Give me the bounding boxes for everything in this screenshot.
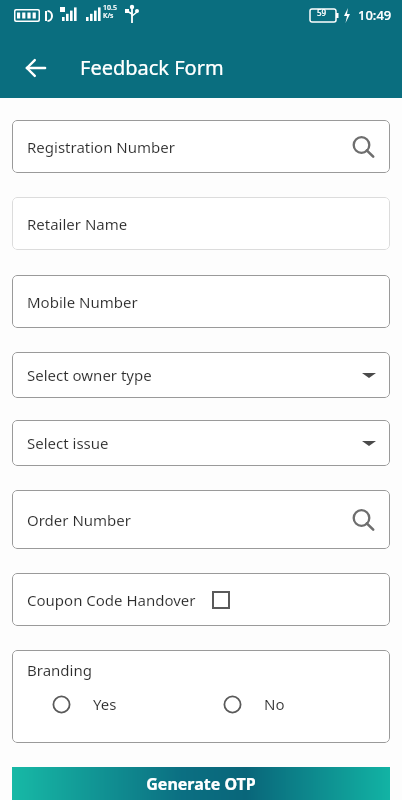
staticText: Generate OTP <box>146 773 256 795</box>
other: Expand owner type <box>362 368 376 382</box>
staticText: 59 <box>317 7 327 18</box>
button[interactable]: Yes <box>52 694 117 714</box>
button[interactable]: Mobile Number <box>12 275 390 328</box>
button[interactable]: Retailer Name <box>12 197 390 250</box>
other: Search <box>350 507 376 533</box>
staticText: Mobile Number <box>27 292 138 312</box>
button[interactable]: Coupon Code Handover <box>12 573 390 626</box>
staticText: No <box>264 694 285 714</box>
staticText: Select owner type <box>27 365 152 385</box>
button[interactable]: Branding <box>12 650 390 743</box>
button[interactable]: Back <box>14 46 58 90</box>
button[interactable]: Select issue <box>12 420 390 466</box>
staticText: 10.5 <box>103 3 117 13</box>
staticText: Feedback Form <box>80 54 224 81</box>
staticText: K/s <box>103 11 114 21</box>
button[interactable]: Order Number <box>12 490 390 549</box>
button[interactable]: Registration Number <box>12 120 390 173</box>
staticText: Yes <box>93 694 117 714</box>
button[interactable]: Coupon Code Handover checkbox <box>212 591 230 609</box>
other: Search <box>350 134 376 160</box>
staticText: Registration Number <box>27 137 175 157</box>
button[interactable]: Select owner type <box>12 352 390 398</box>
button[interactable]: Generate OTP <box>12 767 390 800</box>
staticText: Branding <box>27 660 92 680</box>
staticText: Order Number <box>27 510 131 530</box>
staticText: Retailer Name <box>27 214 128 234</box>
staticText: Coupon Code Handover <box>27 590 196 610</box>
button[interactable]: No <box>223 694 285 714</box>
staticText: Select issue <box>27 433 109 453</box>
staticText: 10:49 <box>358 6 392 24</box>
other: Expand issue <box>362 436 376 450</box>
